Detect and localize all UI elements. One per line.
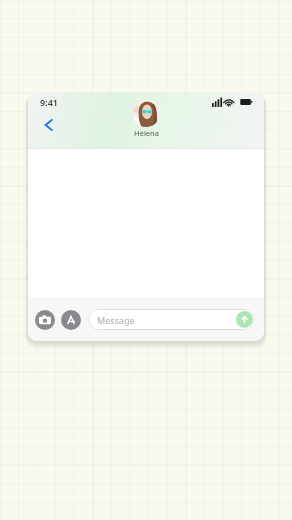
button[interactable]: Send <box>236 311 253 328</box>
button[interactable]: Camera <box>35 310 55 330</box>
staticText: 9:41 <box>40 96 58 108</box>
button[interactable]: Back <box>36 112 62 138</box>
button[interactable]: Helena <box>132 99 160 138</box>
staticText: Helena <box>134 128 159 138</box>
button[interactable]: Apps <box>61 310 81 330</box>
staticText: Message <box>97 314 135 326</box>
button[interactable]: Message <box>88 309 255 330</box>
